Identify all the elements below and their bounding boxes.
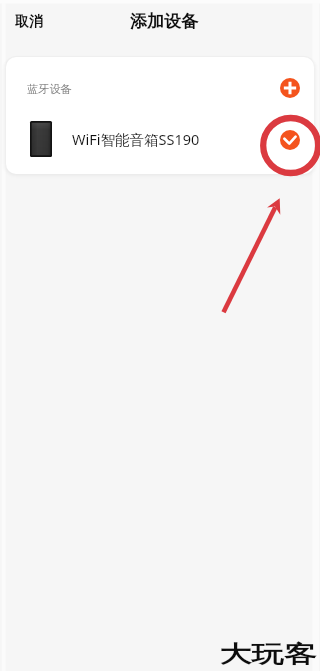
button[interactable]: WiFi智能音箱SS190: [6, 103, 314, 174]
other: Selected: [280, 130, 300, 150]
staticText: 添加设备: [130, 11, 198, 32]
staticText: 取消: [15, 13, 43, 31]
button[interactable]: 取消: [0, 0, 50, 34]
staticText: WiFi智能音箱SS190: [72, 129, 200, 149]
staticText: 蓝牙设备: [27, 82, 72, 96]
button[interactable]: Add device: [280, 78, 300, 98]
staticText: 大玩客: [219, 640, 316, 668]
